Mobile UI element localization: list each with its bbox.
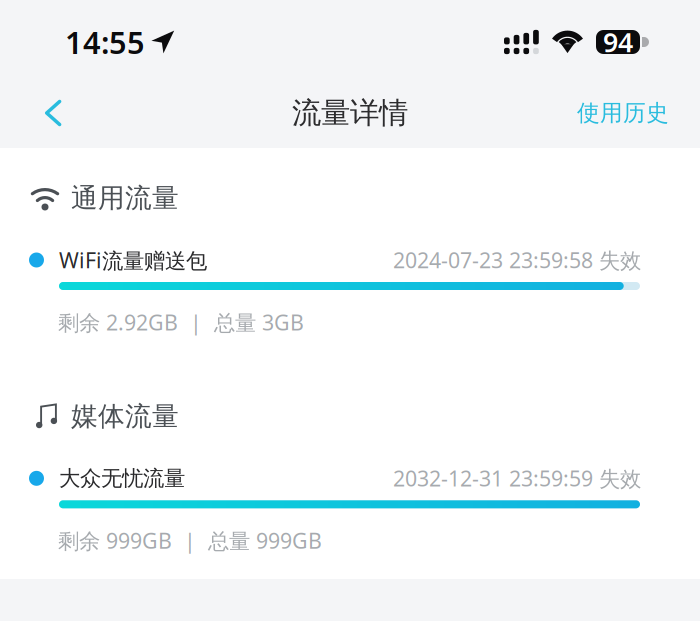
staticText: 剩余 999GB | 总量 999GB (58, 526, 322, 555)
staticText: 14:55 (65, 22, 145, 62)
staticText: WiFi流量赠送包 (59, 246, 207, 274)
staticText: 通用流量 (71, 182, 179, 214)
staticText: 流量详情 (292, 95, 408, 131)
button[interactable]: Back (27, 82, 79, 144)
staticText: 媒体流量 (71, 400, 179, 433)
staticText: 2024-07-23 23:59:58 失效 (393, 246, 641, 274)
staticText: 大众无忧流量 (59, 465, 185, 491)
staticText: 使用历史 (577, 99, 669, 127)
staticText: 剩余 2.92GB | 总量 3GB (58, 308, 304, 336)
button[interactable]: 使用历史 (565, 81, 681, 145)
staticText: 2032-12-31 23:59:59 失效 (393, 464, 641, 492)
staticText: 94 (603, 24, 633, 60)
